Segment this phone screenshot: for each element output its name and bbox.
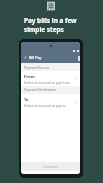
staticText: Select an account to pay from xyxy=(24,80,70,84)
staticText: Pay bills in a few xyxy=(24,16,77,25)
staticText: Payment Source xyxy=(24,65,50,69)
staticText: simple steps xyxy=(24,25,64,34)
staticText: Select an account to pay to xyxy=(24,103,66,107)
button[interactable]: Back xyxy=(21,52,29,63)
button[interactable]: From xyxy=(21,71,80,86)
staticText: Continue xyxy=(43,164,58,169)
staticText: From xyxy=(24,74,35,80)
staticText: To xyxy=(24,97,29,103)
button[interactable]: Continue xyxy=(21,162,80,171)
button[interactable]: To xyxy=(21,94,80,110)
other: Bill receipt xyxy=(47,1,55,11)
staticText: Bill Pay xyxy=(29,55,42,60)
staticText: Payment Destination xyxy=(24,87,57,91)
